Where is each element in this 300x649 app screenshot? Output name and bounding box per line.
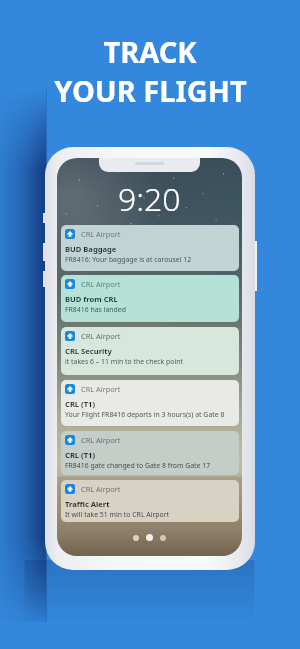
staticText: YOUR FLIGHT <box>54 71 247 110</box>
button[interactable]: CRL Airport <box>61 225 239 271</box>
staticText: BUD Baggage <box>65 244 117 254</box>
staticText: 9:20 <box>118 177 181 221</box>
staticText: It will take 51 min to CRL Airport <box>65 510 170 519</box>
staticText: CRL (T1) <box>65 450 95 460</box>
staticText: Your Flight FR8416 departs in 3 hours(s)… <box>65 410 225 419</box>
staticText: CRL Airport <box>81 279 121 289</box>
button[interactable]: CRL Airport <box>61 327 239 375</box>
staticText: Traffic Alert <box>65 499 110 509</box>
button[interactable]: CRL Airport <box>61 480 239 522</box>
button[interactable]: Camera <box>160 535 166 541</box>
staticText: CRL Airport <box>81 331 121 341</box>
staticText: it takes 6 – 11 min to the check point <box>65 357 184 366</box>
staticText: FR8416 gate changed to Gate 8 from Gate … <box>65 461 211 470</box>
staticText: CRL Airport <box>81 484 121 494</box>
button[interactable]: CRL Airport <box>61 431 239 475</box>
button[interactable]: CRL Airport <box>61 380 239 426</box>
staticText: FR8416: Your baggage is at carousel 12 <box>65 255 192 264</box>
staticText: TRACK <box>103 32 197 71</box>
staticText: BUD from CRL <box>65 294 118 304</box>
staticText: FR8416 has landed <box>65 305 126 314</box>
button[interactable]: Phone <box>133 535 139 541</box>
button[interactable]: Home <box>146 534 153 541</box>
button[interactable]: CRL Airport <box>61 275 239 322</box>
staticText: CRL Airport <box>81 229 121 239</box>
staticText: CRL Security <box>65 346 112 356</box>
staticText: CRL (T1) <box>65 399 95 409</box>
staticText: CRL Airport <box>81 435 121 445</box>
staticText: CRL Airport <box>81 384 121 394</box>
